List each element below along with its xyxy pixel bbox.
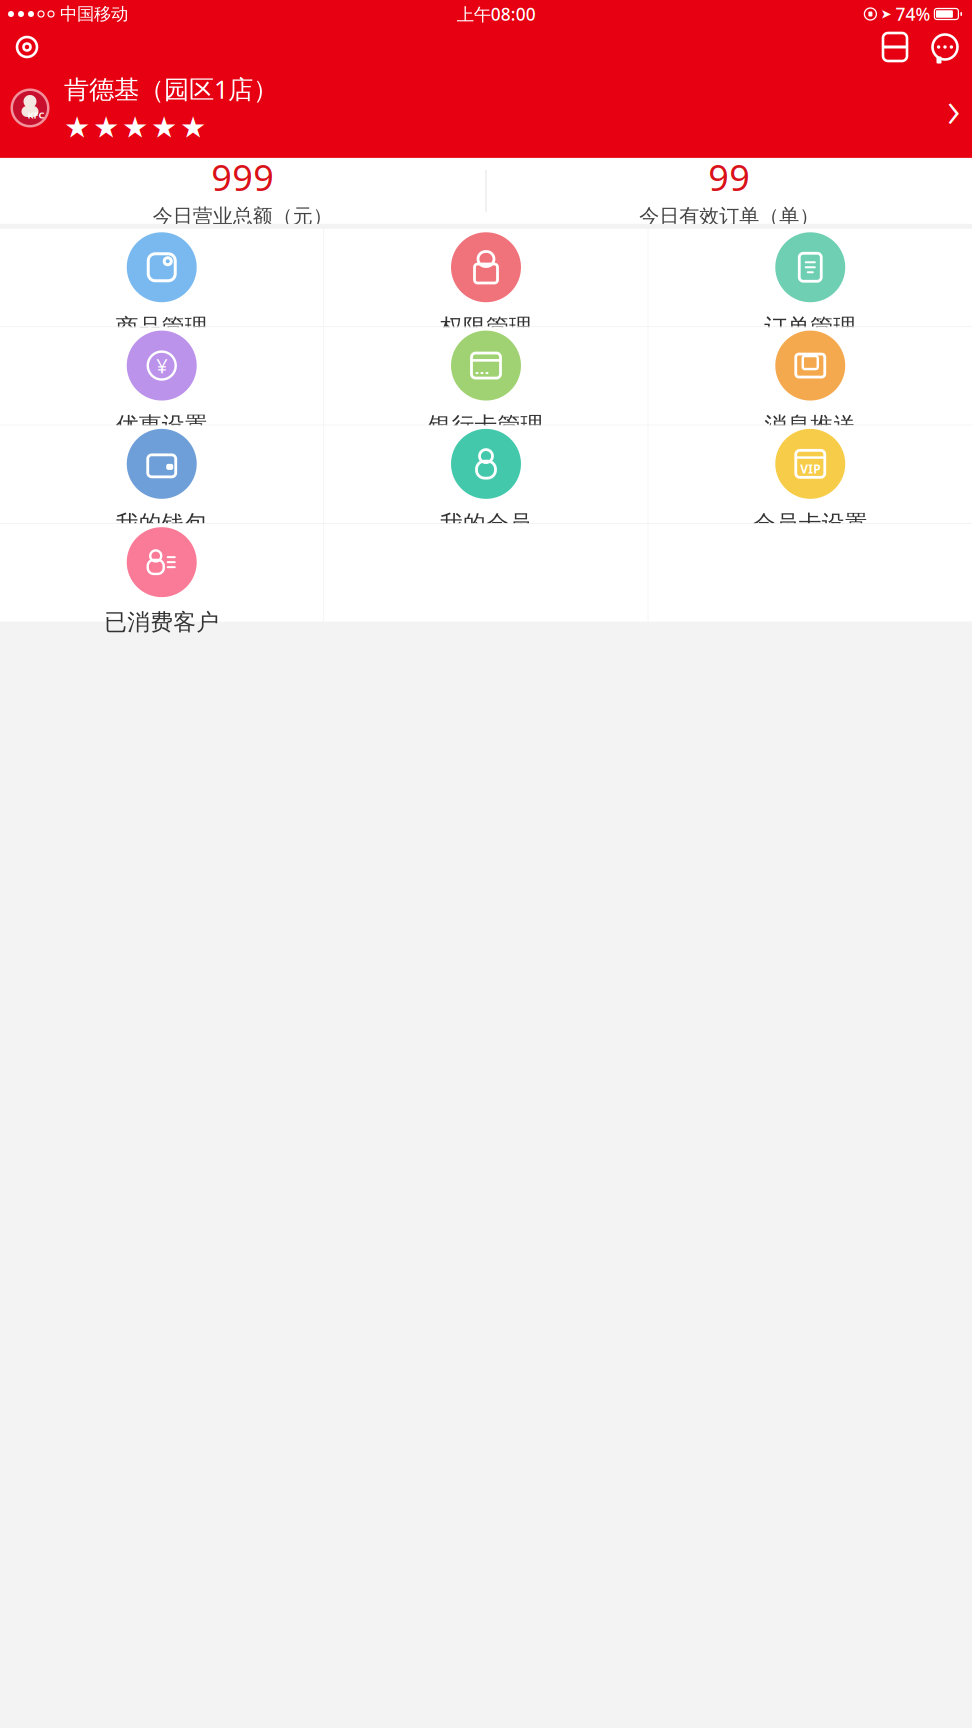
staticText: 优惠设置 [116,412,208,439]
staticText: 会员卡设置 [753,510,868,538]
button[interactable]: ¥ [0,327,323,425]
staticText: 中国移动 [60,3,128,25]
button[interactable]: Scan [878,30,912,64]
staticText: 已消费客户 [104,608,219,636]
staticText: 商品管理 [116,313,208,341]
staticText: ➤ [880,6,891,21]
button[interactable]: KFC [0,64,972,144]
staticText: 订单管理 [764,313,856,341]
staticText: › [947,74,960,142]
staticText: 消息推送 [764,412,856,439]
button[interactable]: 权限管理 [324,229,648,326]
staticText: VIP [800,461,820,477]
button[interactable]: 我的钱包 [0,425,323,523]
staticText: 今日有效订单（单） [639,204,819,229]
button[interactable]: 已消费客户 [0,524,323,621]
staticText: 银行卡管理 [428,412,543,439]
staticText: ¥ [156,352,167,379]
staticText: 我的会员 [440,510,532,538]
button[interactable]: VIP [648,425,972,523]
staticText: 99 [708,153,750,201]
button[interactable]: Settings [10,30,44,64]
staticText: ★ [180,111,206,144]
button[interactable]: 我的会员 [324,425,648,523]
button[interactable]: 商品管理 [0,229,323,326]
staticText: 今日营业总额（元） [153,204,333,229]
staticText: KFC [27,109,44,121]
staticText: 我的钱包 [116,510,208,538]
button[interactable]: 消息推送 [648,327,972,425]
staticText: 74% [895,2,930,25]
staticText: 999 [211,153,274,201]
staticText: ★ [122,111,148,144]
button[interactable]: 订单管理 [648,229,972,326]
staticText: ★ [93,111,119,144]
staticText: 权限管理 [440,313,532,341]
button[interactable]: 银行卡管理 [324,327,648,425]
staticText: ★ [151,111,177,144]
staticText: 肯德基（园区1店） [64,72,278,106]
button[interactable]: Messages [928,30,962,64]
staticText: 上午08:00 [457,2,536,25]
staticText: ★ [64,111,90,144]
